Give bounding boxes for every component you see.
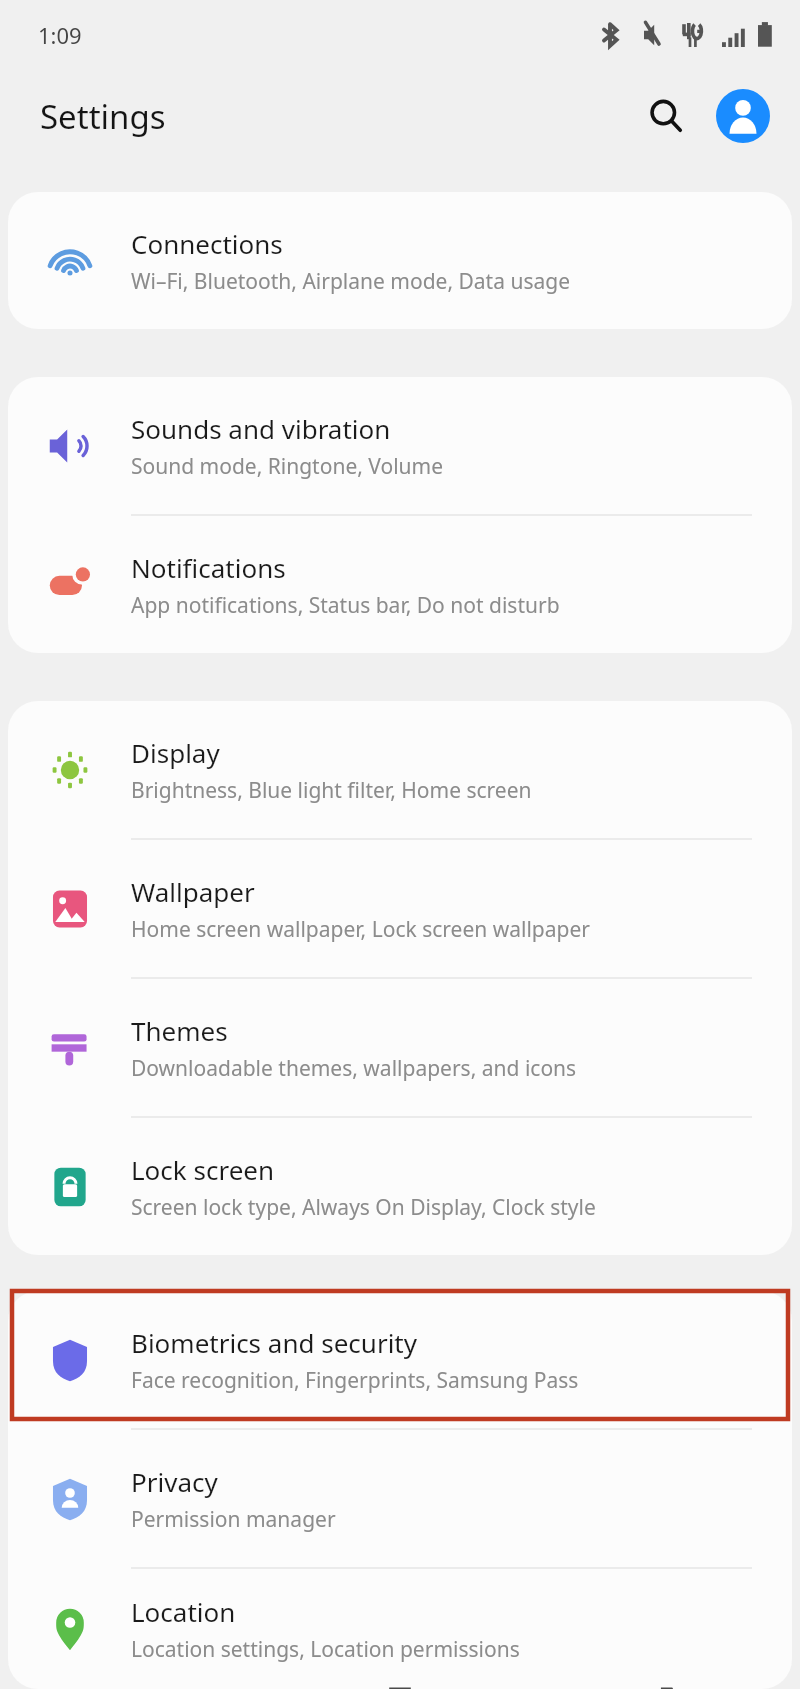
staticText: Wi–Fi, Bluetooth, Airplane mode, Data us… bbox=[131, 267, 570, 296]
staticText: Notifications bbox=[131, 550, 286, 585]
button[interactable]: Themes bbox=[8, 979, 792, 1116]
button[interactable]: Privacy bbox=[8, 1430, 792, 1567]
button[interactable]: Search bbox=[636, 86, 696, 146]
staticText: Sound mode, Ringtone, Volume bbox=[131, 452, 444, 481]
staticText: Sounds and vibration bbox=[131, 411, 391, 446]
button[interactable]: Wallpaper bbox=[8, 840, 792, 977]
staticText: Downloadable themes, wallpapers, and ico… bbox=[131, 1054, 577, 1083]
staticText: 1:09 bbox=[38, 20, 82, 50]
staticText: Home screen wallpaper, Lock screen wallp… bbox=[131, 915, 590, 944]
staticText: Location bbox=[131, 1594, 236, 1629]
staticText: Wallpaper bbox=[131, 874, 255, 909]
button[interactable]: Sounds and vibration bbox=[8, 377, 792, 514]
staticText: Biometrics and security bbox=[131, 1325, 418, 1360]
staticText: Privacy bbox=[131, 1464, 218, 1499]
button[interactable]: Notifications bbox=[8, 516, 792, 653]
staticText: Screen lock type, Always On Display, Clo… bbox=[131, 1193, 596, 1222]
staticText: Face recognition, Fingerprints, Samsung … bbox=[131, 1366, 579, 1395]
button[interactable]: Display bbox=[8, 701, 792, 838]
staticText: Display bbox=[131, 735, 220, 770]
staticText: App notifications, Status bar, Do not di… bbox=[131, 591, 560, 620]
button[interactable]: Account bbox=[714, 87, 772, 145]
button[interactable]: Location bbox=[8, 1569, 792, 1689]
staticText: Lock screen bbox=[131, 1152, 275, 1187]
staticText: Brightness, Blue light filter, Home scre… bbox=[131, 776, 532, 805]
staticText: Themes bbox=[131, 1013, 228, 1048]
button[interactable]: Lock screen bbox=[8, 1118, 792, 1255]
button[interactable]: Connections bbox=[8, 192, 792, 329]
staticText: Location settings, Location permissions bbox=[131, 1635, 520, 1664]
staticText: Settings bbox=[40, 94, 166, 139]
button[interactable]: Biometrics and security bbox=[8, 1291, 792, 1428]
staticText: Connections bbox=[131, 226, 283, 261]
staticText: Permission manager bbox=[131, 1505, 336, 1534]
